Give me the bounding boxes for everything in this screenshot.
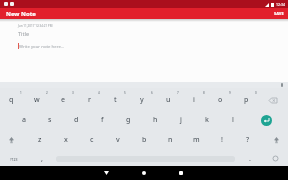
staticText: v [116, 135, 120, 145]
staticText: ? [246, 135, 250, 145]
staticText: 9 [229, 91, 231, 95]
staticText: ! [221, 135, 223, 145]
button[interactable] [9, 137, 14, 143]
button[interactable]: e [54, 95, 72, 105]
button[interactable]: Write your note here... [19, 43, 65, 49]
button[interactable]: 1 [12, 88, 30, 98]
button[interactable]: 9 [221, 88, 239, 98]
staticText: New Note [6, 10, 36, 18]
staticText: k [205, 115, 209, 125]
staticText: Write your note here... [19, 43, 65, 49]
button[interactable]: , [33, 154, 51, 164]
button[interactable]: SAVE [274, 11, 284, 16]
staticText: 5 [124, 91, 126, 95]
button[interactable]: z [31, 135, 49, 145]
staticText: 8 [203, 91, 205, 95]
staticText: 2 [46, 91, 48, 95]
button[interactable]: 6 [143, 88, 161, 98]
button[interactable]: w [28, 95, 46, 105]
staticText: p [244, 95, 249, 105]
staticText: 3 [72, 91, 74, 95]
staticText: 7 [177, 91, 179, 95]
staticText: m [193, 135, 200, 145]
button[interactable] [179, 171, 183, 175]
staticText: q [9, 95, 14, 105]
staticText: SAVE [274, 11, 284, 16]
button[interactable]: h [146, 115, 164, 125]
button[interactable]: y [133, 95, 151, 105]
button[interactable]: 4 [90, 88, 108, 98]
staticText: l [232, 115, 234, 125]
button[interactable]: b [135, 135, 153, 145]
staticText: y [140, 95, 144, 105]
staticText: d [74, 115, 79, 125]
button[interactable]: i [185, 95, 203, 105]
staticText: g [126, 115, 131, 125]
staticText: f [101, 115, 104, 125]
staticText: h [153, 115, 158, 125]
button[interactable]: 5 [116, 88, 134, 98]
staticText: , [41, 154, 43, 164]
button[interactable]: k [198, 115, 216, 125]
button[interactable]: r [80, 95, 98, 105]
staticText: b [142, 135, 147, 145]
staticText: o [218, 95, 223, 105]
staticText: 0 [255, 91, 257, 95]
button[interactable]: g [119, 115, 137, 125]
button[interactable]: ! [213, 135, 231, 145]
staticText: i [193, 95, 195, 105]
staticText: Jun 11,2017 12:34:21 PM [18, 24, 53, 28]
button[interactable]: 8 [195, 88, 213, 98]
button[interactable]: j [172, 115, 190, 125]
button[interactable]: t [106, 95, 124, 105]
button[interactable]: c [83, 135, 101, 145]
staticText: z [38, 135, 42, 145]
button[interactable]: d [67, 115, 85, 125]
staticText: 12:34 [276, 2, 285, 7]
button[interactable]: ?123 [5, 154, 23, 164]
staticText: w [34, 95, 40, 105]
staticText: u [166, 95, 171, 105]
button[interactable]: m [187, 135, 205, 145]
button[interactable] [269, 98, 277, 103]
button[interactable]: p [237, 95, 255, 105]
button[interactable] [261, 115, 272, 126]
staticText: a [22, 115, 27, 125]
button[interactable] [274, 137, 279, 143]
staticText: e [61, 95, 66, 105]
button[interactable]: ? [239, 135, 257, 145]
button[interactable]: n [161, 135, 179, 145]
staticText: Title [18, 30, 29, 37]
staticText: r [88, 95, 91, 105]
button[interactable]: s [41, 115, 59, 125]
button[interactable]: v [109, 135, 127, 145]
button[interactable]: 7 [169, 88, 187, 98]
staticText: t [114, 95, 117, 105]
button[interactable]: x [57, 135, 75, 145]
button[interactable]: 3 [64, 88, 82, 98]
button[interactable]: 2 [38, 88, 56, 98]
button[interactable] [104, 171, 109, 175]
button[interactable]: 0 [247, 88, 265, 98]
button[interactable]: q [2, 95, 20, 105]
staticText: j [180, 115, 182, 125]
staticText: c [90, 135, 94, 145]
button[interactable]: Title [18, 30, 29, 37]
staticText: 6 [151, 91, 153, 95]
staticText: x [64, 135, 68, 145]
button[interactable]: o [211, 95, 229, 105]
staticText: n [168, 135, 173, 145]
staticText: s [48, 115, 52, 125]
staticText: 1 [20, 91, 22, 95]
button[interactable] [142, 171, 146, 175]
button[interactable]: . [241, 154, 259, 164]
button[interactable]: l [224, 115, 242, 125]
button[interactable]: a [15, 115, 33, 125]
staticText: ?123 [10, 157, 18, 162]
button[interactable] [273, 156, 278, 161]
staticText: 4 [98, 91, 100, 95]
button[interactable]: u [159, 95, 177, 105]
button[interactable]: f [93, 115, 111, 125]
staticText: . [249, 154, 251, 164]
